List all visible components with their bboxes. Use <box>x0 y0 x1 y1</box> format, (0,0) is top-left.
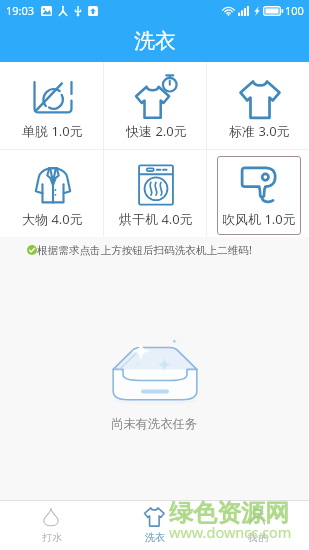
button[interactable]: 我的 <box>206 501 309 550</box>
button[interactable]: 大物 4.0元 <box>10 156 95 235</box>
staticText: 100 <box>285 3 304 18</box>
button[interactable]: 打水 <box>0 501 103 550</box>
staticText: 我的 <box>248 531 268 544</box>
staticText: 根据需求点击上方按钮后扫码洗衣机上二维码! <box>37 243 252 257</box>
button[interactable]: 吹风机 1.0元 <box>217 156 301 235</box>
staticText: 标准 3.0元 <box>229 122 290 140</box>
staticText: 吹风机 1.0元 <box>222 210 296 228</box>
button[interactable]: 快速 2.0元 <box>114 68 198 147</box>
staticText: 洗衣 <box>134 28 176 54</box>
staticText: www.downcc.com <box>169 522 292 542</box>
staticText: 打水 <box>42 531 62 544</box>
staticText: 单脱 1.0元 <box>22 122 83 140</box>
staticText: 快速 2.0元 <box>126 122 187 140</box>
staticText: 大物 4.0元 <box>22 210 83 228</box>
staticText: 洗衣 <box>145 531 165 544</box>
button[interactable]: 洗衣 <box>103 501 206 550</box>
staticText: 烘干机 4.0元 <box>119 210 193 228</box>
button[interactable]: 烘干机 4.0元 <box>114 156 198 235</box>
button[interactable]: 标准 3.0元 <box>217 68 301 147</box>
button[interactable]: 单脱 1.0元 <box>10 68 95 147</box>
staticText: 尚未有洗衣任务 <box>111 416 198 431</box>
staticText: 绿色资源网 <box>169 498 289 528</box>
staticText: 19:03 <box>6 3 35 18</box>
